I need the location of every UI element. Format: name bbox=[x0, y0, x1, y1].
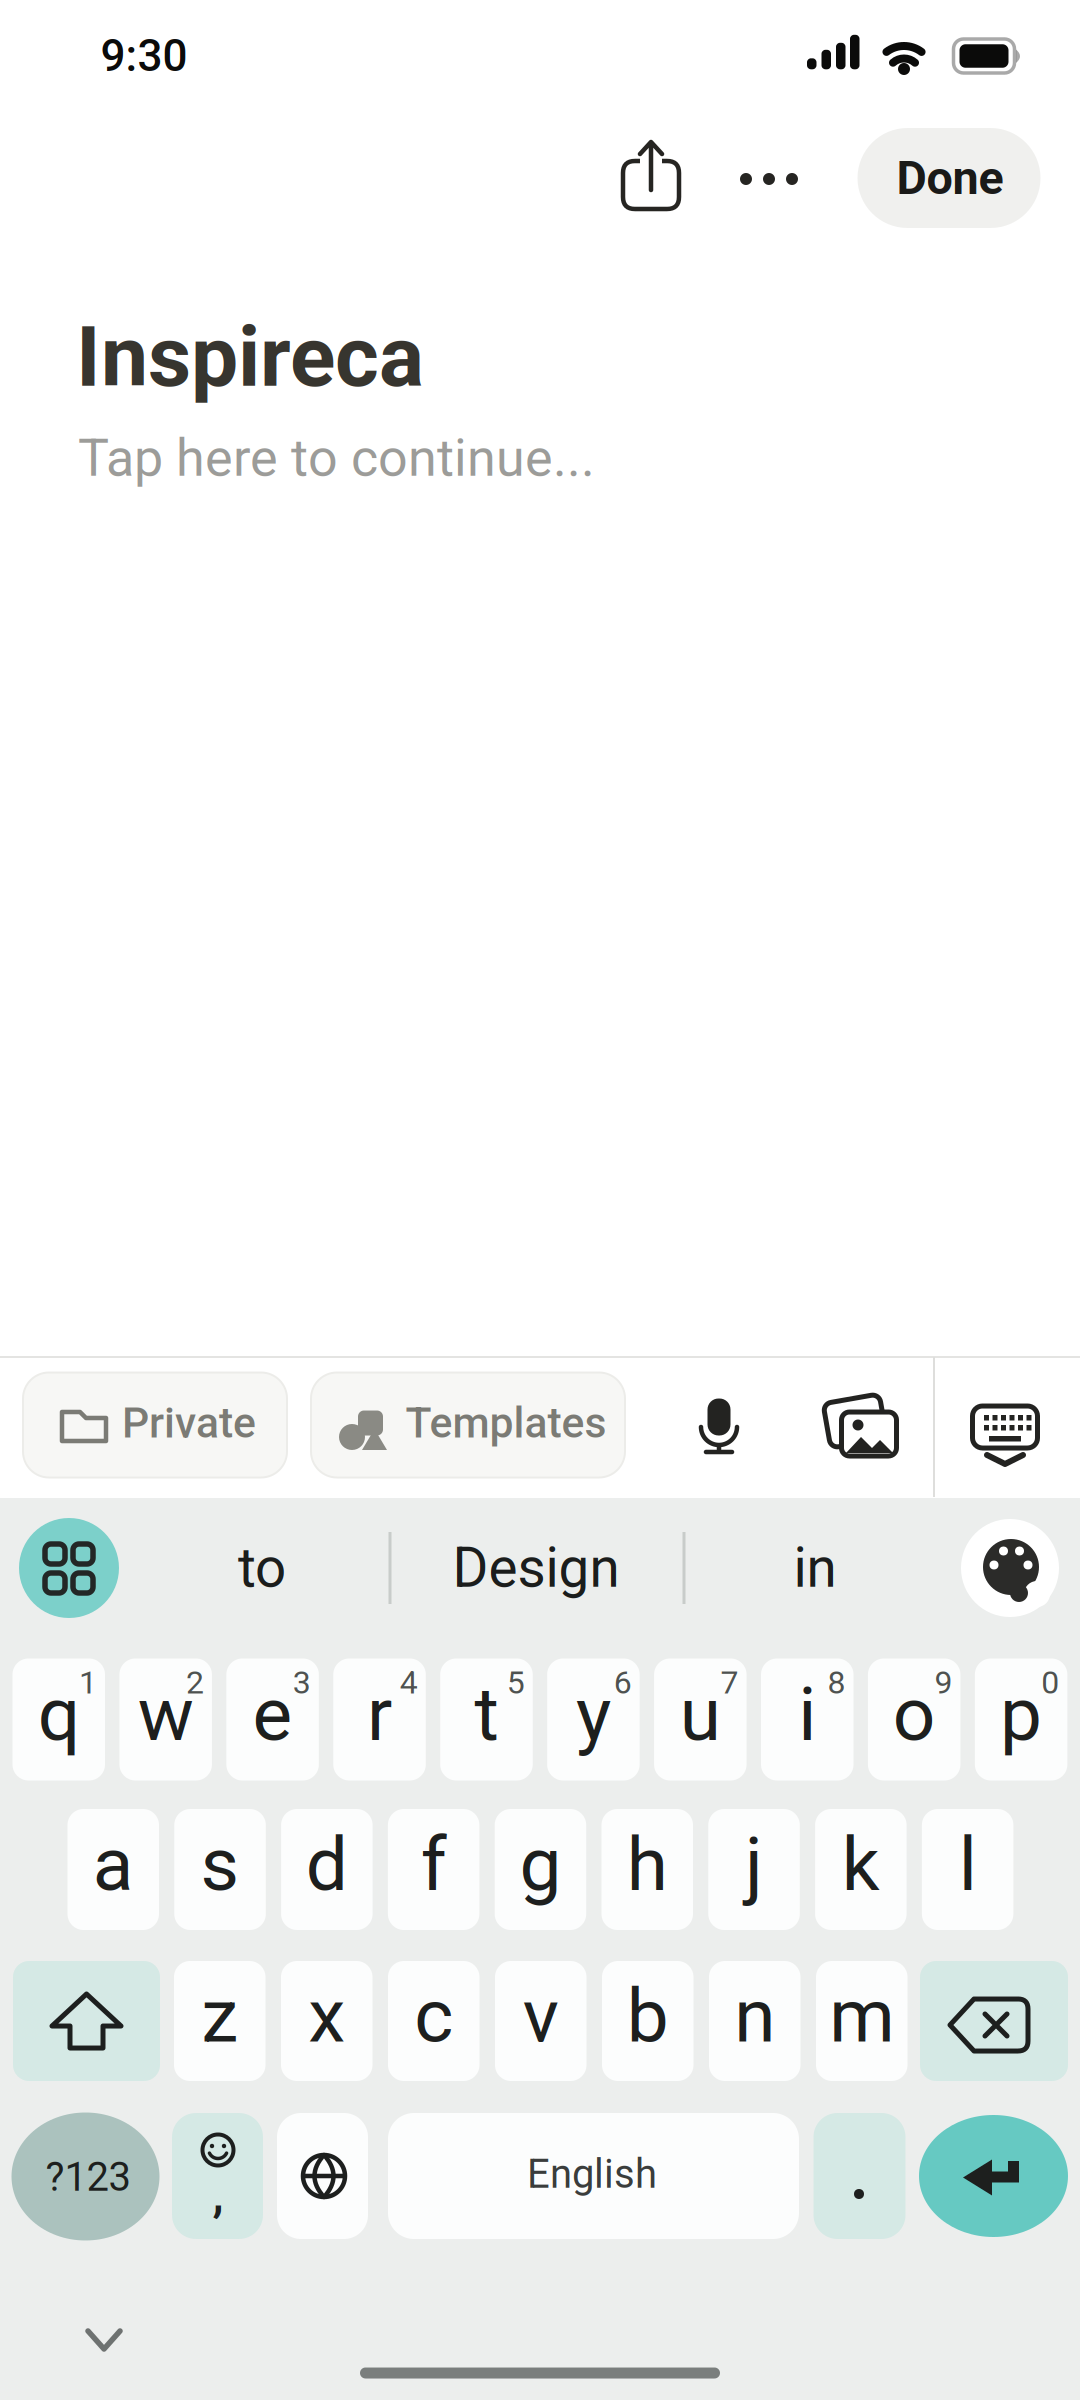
staticText: to bbox=[238, 1536, 286, 1600]
staticText: v bbox=[523, 1972, 559, 2060]
staticText: Inspireca bbox=[76, 308, 424, 406]
staticText: d bbox=[306, 1821, 348, 1908]
staticText: i bbox=[798, 1671, 816, 1758]
staticText: , bbox=[212, 2169, 223, 2222]
staticText: 8 bbox=[827, 1664, 845, 1701]
staticText: 9 bbox=[934, 1664, 952, 1701]
staticText: f bbox=[421, 1821, 447, 1908]
staticText: Templates bbox=[405, 1398, 606, 1448]
staticText: t bbox=[474, 1671, 498, 1758]
staticText: n bbox=[734, 1972, 775, 2060]
staticText: 5 bbox=[507, 1664, 525, 1701]
staticText: 1 bbox=[79, 1664, 97, 1701]
staticText: Private bbox=[122, 1398, 256, 1448]
staticText: Design bbox=[452, 1536, 619, 1600]
staticText: b bbox=[627, 1972, 669, 2060]
staticText: 9:30 bbox=[100, 30, 187, 82]
staticText: 2 bbox=[186, 1664, 204, 1701]
staticText: Done bbox=[896, 151, 1003, 205]
staticText: o bbox=[893, 1671, 936, 1758]
staticText: 6 bbox=[614, 1664, 632, 1701]
staticText: z bbox=[201, 1972, 238, 2060]
staticText: 3 bbox=[293, 1664, 311, 1701]
staticText: x bbox=[308, 1972, 345, 2060]
staticText: q bbox=[38, 1671, 80, 1758]
staticText: English bbox=[527, 2151, 657, 2197]
staticText: s bbox=[201, 1821, 240, 1908]
staticText: u bbox=[680, 1671, 721, 1758]
staticText: r bbox=[367, 1671, 392, 1758]
staticText: 7 bbox=[721, 1664, 739, 1701]
staticText: in bbox=[793, 1536, 836, 1600]
staticText: p bbox=[1000, 1671, 1042, 1758]
staticText: g bbox=[519, 1821, 561, 1908]
staticText: m bbox=[829, 1972, 894, 2060]
staticText: w bbox=[138, 1671, 194, 1758]
staticText: k bbox=[842, 1821, 880, 1908]
staticText: 4 bbox=[400, 1664, 418, 1701]
staticText: Tap here to continue... bbox=[78, 427, 595, 488]
staticText: l bbox=[959, 1821, 977, 1908]
staticText: j bbox=[745, 1821, 763, 1908]
staticText: y bbox=[576, 1671, 611, 1758]
staticText: 0 bbox=[1041, 1664, 1059, 1701]
staticText: h bbox=[627, 1821, 668, 1908]
staticText: e bbox=[253, 1671, 293, 1758]
staticText: c bbox=[414, 1972, 453, 2060]
staticText: ?123 bbox=[45, 2154, 130, 2200]
staticText: a bbox=[93, 1821, 134, 1908]
